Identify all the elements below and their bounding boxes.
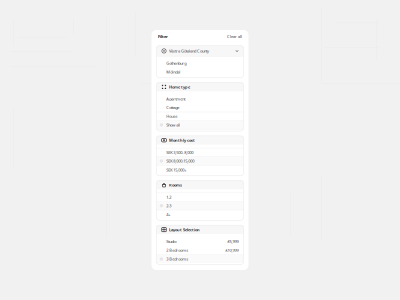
staticText: Mölndal bbox=[166, 69, 180, 74]
staticText: House bbox=[166, 114, 177, 119]
staticText: Apartment bbox=[166, 96, 185, 101]
staticText: Gothenburg bbox=[166, 61, 186, 66]
staticText: -€10,999 bbox=[224, 247, 238, 253]
staticText: 1-2 bbox=[166, 194, 171, 200]
button[interactable]: SEK 15,000+ bbox=[156, 165, 243, 174]
staticText: 4+ bbox=[166, 212, 170, 217]
staticText: Studio bbox=[166, 239, 176, 244]
button[interactable]: Studio bbox=[156, 237, 243, 246]
button[interactable]: 2-3 bbox=[156, 201, 243, 210]
staticText: SEK 3,500- 8,000 bbox=[166, 150, 193, 155]
staticText: 2 Bedrooms bbox=[166, 247, 188, 253]
staticText: Clear all bbox=[227, 34, 242, 39]
staticText: Layout Selection bbox=[169, 227, 200, 232]
button[interactable]: House bbox=[156, 112, 243, 120]
staticText: SEK 15,000+ bbox=[166, 167, 186, 172]
staticText: Monthly cost bbox=[169, 138, 195, 143]
staticText: Rooms bbox=[169, 182, 182, 188]
staticText: SEK 8,000-15,000 bbox=[166, 158, 194, 164]
button[interactable]: 1-2 bbox=[156, 193, 243, 201]
staticText: 2-3 bbox=[166, 203, 171, 208]
button[interactable]: SEK 8,000-15,000 bbox=[156, 156, 243, 165]
staticText: 3 Bedrooms bbox=[166, 256, 188, 262]
button[interactable]: Cottage bbox=[156, 103, 243, 112]
staticText: Västra Götaland County bbox=[169, 48, 209, 54]
button[interactable]: Show all bbox=[156, 120, 243, 129]
button[interactable]: 4+ bbox=[156, 210, 243, 219]
button[interactable]: Mölndal bbox=[156, 67, 243, 76]
button[interactable]: 3 Bedrooms bbox=[156, 254, 243, 263]
staticText: -€5,999 bbox=[226, 239, 238, 244]
button[interactable]: Västra Götaland County bbox=[156, 46, 243, 56]
staticText: Show all bbox=[166, 122, 180, 127]
button[interactable]: Clear all bbox=[226, 34, 242, 39]
button[interactable]: SEK 3,500- 8,000 bbox=[156, 148, 243, 156]
button[interactable]: Gothenburg bbox=[156, 59, 243, 67]
button[interactable]: Apartment bbox=[156, 94, 243, 103]
staticText: Filter bbox=[158, 34, 168, 39]
staticText: Cottage bbox=[166, 105, 179, 110]
staticText: Home type bbox=[169, 84, 190, 90]
button[interactable]: 2 Bedrooms bbox=[156, 246, 243, 254]
